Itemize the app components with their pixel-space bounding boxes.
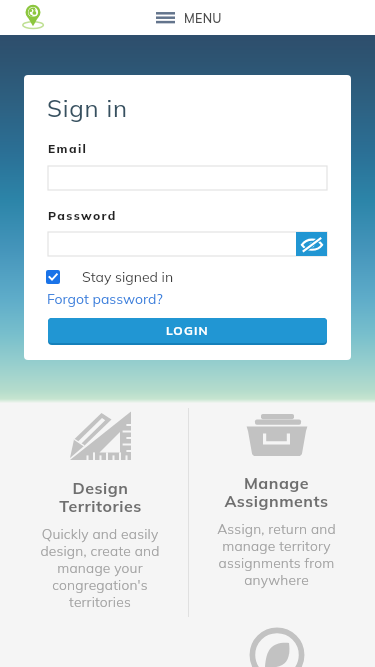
- staticText: Manage Assignments: [224, 473, 329, 511]
- button[interactable]: Email field: [48, 166, 327, 190]
- staticText: Password: [48, 208, 117, 223]
- button[interactable]: Password field: [48, 232, 327, 256]
- button[interactable]: Forgot password?: [47, 289, 163, 309]
- button[interactable]: Stay signed in: [45, 266, 180, 288]
- button[interactable]: Home: [20, 3, 48, 31]
- button[interactable]: MENU: [152, 5, 226, 31]
- staticText: Assign, return and manage territory assi…: [217, 520, 336, 588]
- button[interactable]: Show password: [296, 232, 327, 256]
- staticText: Stay signed in: [82, 268, 174, 286]
- staticText: Design Territories: [59, 478, 142, 516]
- staticText: Sign in: [47, 93, 128, 123]
- button[interactable]: LOGIN: [48, 318, 327, 343]
- staticText: Email: [48, 141, 88, 156]
- staticText: MENU: [184, 10, 222, 26]
- staticText: Quickly and easily design, create and ma…: [40, 525, 160, 610]
- staticText: LOGIN: [166, 323, 209, 338]
